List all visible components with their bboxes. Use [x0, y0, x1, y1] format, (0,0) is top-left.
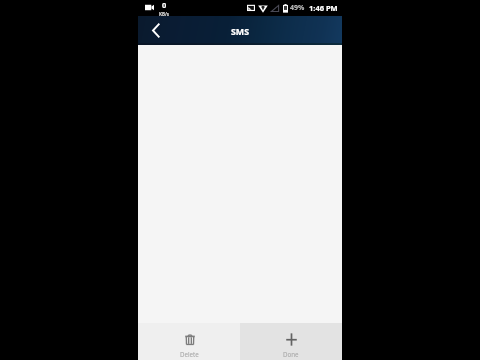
staticText: Delete	[180, 350, 199, 358]
staticText: SMS	[231, 26, 249, 38]
staticText: 49%	[290, 3, 305, 13]
staticText: Done	[283, 350, 299, 358]
button[interactable]: Back	[138, 16, 174, 45]
staticText: 0	[162, 0, 167, 10]
button[interactable]: Done	[240, 323, 342, 360]
staticText: 1:46 PM	[309, 3, 338, 13]
button[interactable]: Delete	[138, 323, 240, 360]
staticText: KB/s	[159, 11, 170, 16]
